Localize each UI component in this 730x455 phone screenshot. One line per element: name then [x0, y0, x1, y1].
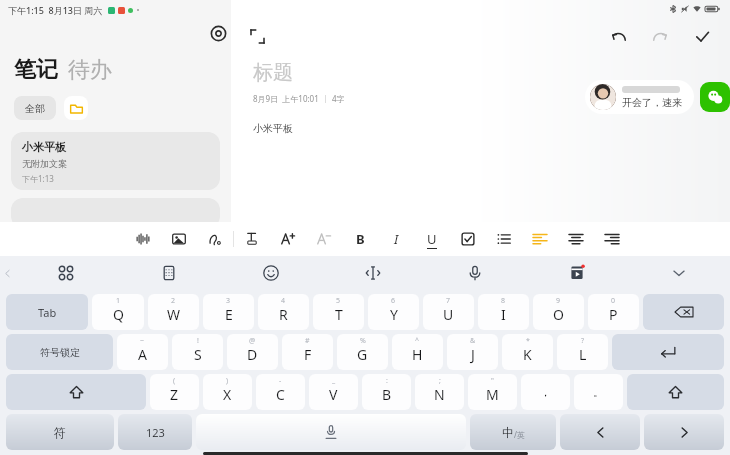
button[interactable]: @ [227, 334, 278, 370]
staticText: 。 [593, 385, 604, 399]
staticText: * [526, 336, 530, 346]
staticText: I [394, 230, 399, 248]
button[interactable]: U [414, 222, 450, 256]
button[interactable]: 3 [203, 294, 254, 330]
staticText: K [523, 345, 532, 364]
button[interactable]: ， [521, 374, 570, 410]
button[interactable]: Bullet list [486, 222, 522, 256]
button[interactable]: ) [203, 374, 252, 410]
button[interactable]: 6 [368, 294, 419, 330]
staticText: ? [581, 336, 585, 346]
staticText: 全部 [25, 102, 45, 115]
staticText: U [427, 230, 437, 248]
button[interactable]: 小米平板 [11, 132, 220, 190]
button[interactable]: Hide keyboard [628, 256, 730, 290]
button[interactable]: Tab [6, 294, 88, 330]
button[interactable]: 符 [6, 414, 114, 450]
button[interactable]: Next [644, 414, 724, 450]
button[interactable]: : [362, 374, 411, 410]
button[interactable]: # [282, 334, 333, 370]
staticText: ^ [415, 336, 420, 346]
staticText: - [279, 376, 282, 386]
staticText: V [329, 385, 338, 404]
staticText: T [335, 305, 343, 324]
button[interactable]: Highlight [234, 222, 270, 256]
button[interactable]: Settings [205, 20, 231, 46]
button[interactable]: Voice [125, 222, 161, 256]
button[interactable]: 开会了，速来 [585, 80, 694, 114]
button[interactable]: " [468, 374, 517, 410]
button[interactable]: B [342, 222, 378, 256]
button[interactable]: 2 [148, 294, 199, 330]
button[interactable]: Shift right [627, 374, 724, 410]
button[interactable]: Image [161, 222, 197, 256]
button[interactable]: & [447, 334, 498, 370]
button[interactable]: 。 [574, 374, 623, 410]
button[interactable]: 待办 [68, 56, 112, 84]
button[interactable]: I [378, 222, 414, 256]
button[interactable]: Backspace [643, 294, 724, 330]
button[interactable]: ^ [392, 334, 443, 370]
button[interactable]: 7 [423, 294, 474, 330]
button[interactable]: Align right [594, 222, 630, 256]
button[interactable]: * [502, 334, 553, 370]
button[interactable]: ; [415, 374, 464, 410]
button[interactable]: _ [309, 374, 358, 410]
button[interactable]: Done [688, 22, 716, 50]
button[interactable]: ( [150, 374, 199, 410]
staticText: 4字 [332, 93, 345, 104]
staticText: @ [249, 336, 256, 346]
button[interactable]: Space [196, 414, 466, 450]
staticText: ! [197, 336, 199, 346]
button[interactable]: 符号锁定 [6, 334, 113, 370]
button[interactable]: Previous [560, 414, 640, 450]
button[interactable]: ? [557, 334, 608, 370]
button[interactable]: Folders [64, 96, 88, 120]
button[interactable]: 4 [258, 294, 309, 330]
button[interactable]: Keyboard layout [117, 256, 220, 290]
staticText: Tab [38, 305, 57, 320]
button[interactable]: Align center [558, 222, 594, 256]
button[interactable]: 中 [470, 414, 556, 450]
button[interactable]: 123 [118, 414, 192, 450]
staticText: ) [226, 376, 229, 386]
button[interactable]: Apps [14, 256, 117, 290]
button[interactable] [11, 198, 220, 228]
button[interactable]: Media [526, 256, 628, 290]
button[interactable]: 5 [313, 294, 364, 330]
button[interactable]: - [256, 374, 305, 410]
button[interactable]: Cursor [322, 256, 424, 290]
button[interactable]: Undo [604, 22, 632, 50]
staticText: 3 [226, 296, 231, 306]
button[interactable]: Expand [245, 24, 269, 48]
staticText: S [194, 345, 202, 364]
button[interactable]: % [337, 334, 388, 370]
staticText: B [356, 230, 365, 248]
staticText: % [360, 336, 366, 346]
button[interactable]: 8 [478, 294, 529, 330]
button[interactable]: 笔记 [14, 56, 58, 84]
button[interactable]: Align left [522, 222, 558, 256]
button[interactable]: 0 [588, 294, 639, 330]
button[interactable]: Checkbox [450, 222, 486, 256]
button[interactable]: ! [172, 334, 223, 370]
button[interactable]: Voice input [424, 256, 526, 290]
button[interactable]: 1 [92, 294, 144, 330]
staticText: 符号锁定 [40, 346, 80, 359]
staticText: 无附加文案 [22, 158, 67, 169]
button[interactable]: WeChat [700, 82, 730, 112]
button[interactable]: Draw [197, 222, 233, 256]
staticText: H [412, 345, 423, 364]
staticText: Z [170, 385, 179, 404]
button[interactable]: Increase font [270, 222, 306, 256]
button[interactable]: Emoji [220, 256, 322, 290]
button[interactable]: 9 [533, 294, 584, 330]
button[interactable]: 全部 [14, 96, 56, 120]
button[interactable]: Shift [6, 374, 146, 410]
button[interactable]: Decrease font [306, 222, 342, 256]
button[interactable]: ~ [117, 334, 168, 370]
button[interactable]: Collapse [0, 256, 14, 290]
button[interactable]: Redo [646, 22, 674, 50]
button[interactable]: Enter [612, 334, 724, 370]
staticText: W [167, 305, 181, 324]
